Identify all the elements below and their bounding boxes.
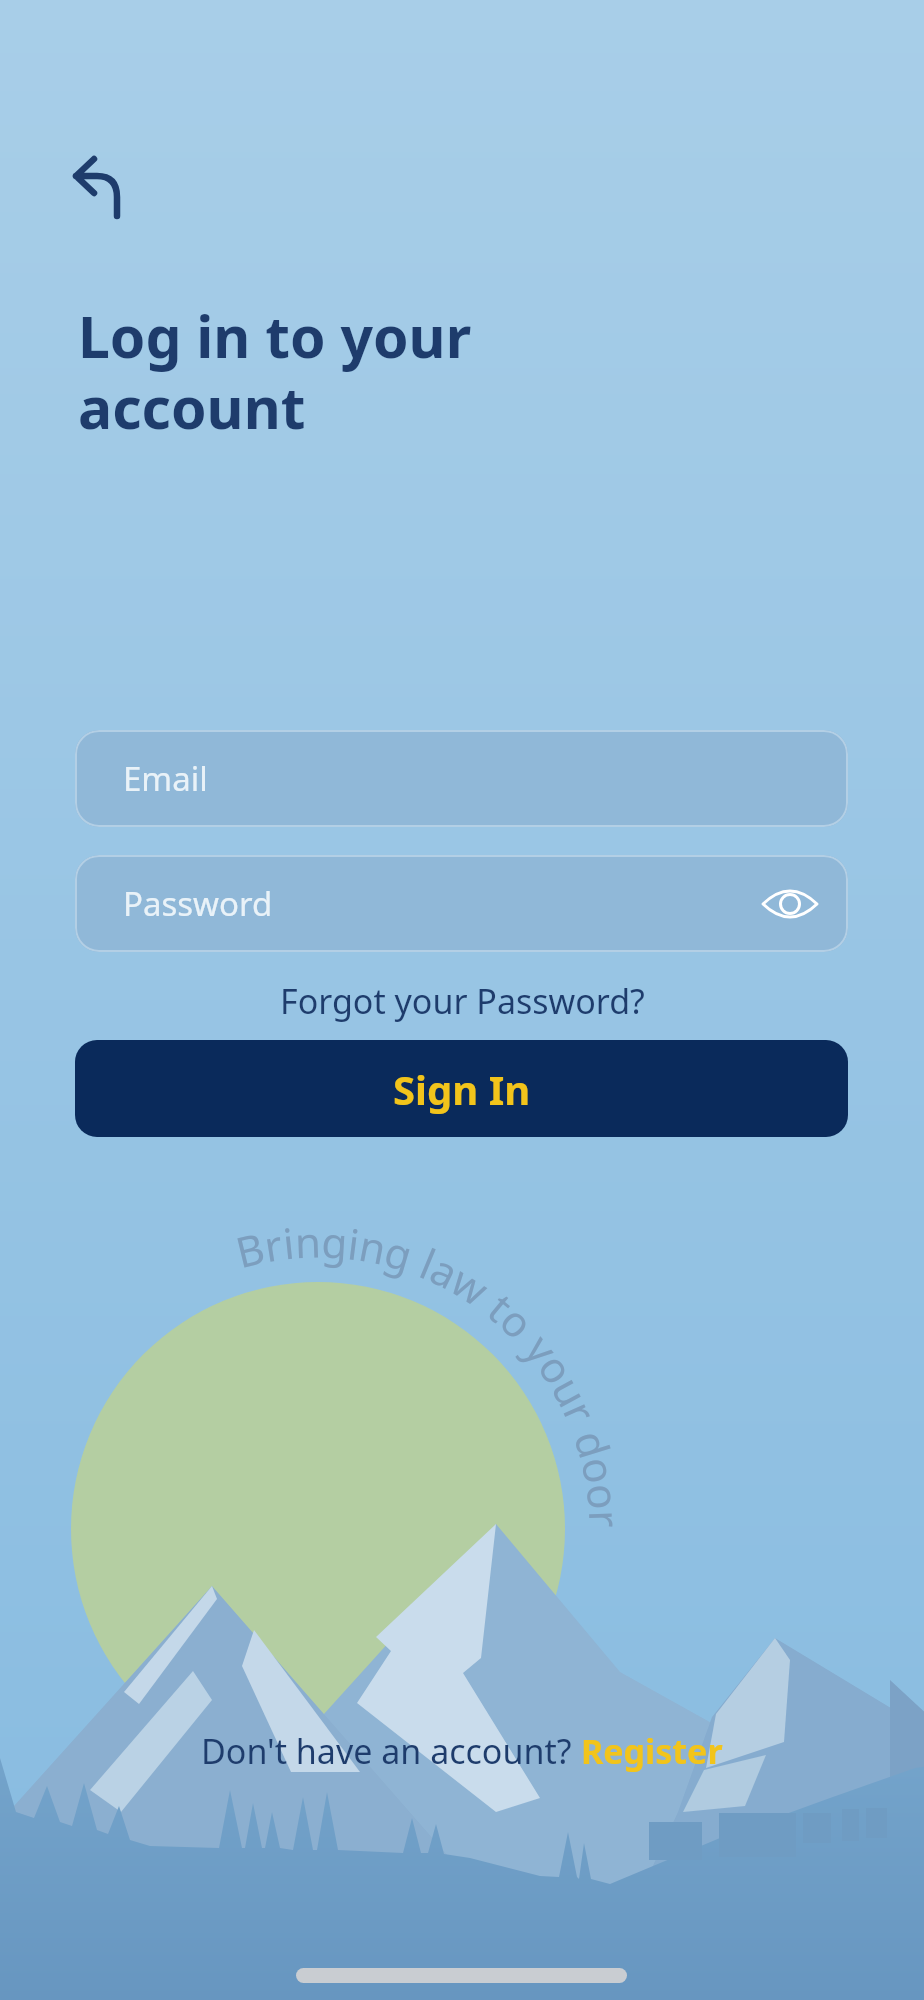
staticText: Sign In <box>393 1062 531 1116</box>
button[interactable]: Sign In <box>75 1040 848 1137</box>
staticText: Password <box>123 881 273 926</box>
staticText: Register <box>581 1728 723 1774</box>
button[interactable]: Register <box>581 1728 723 1774</box>
staticText: Forgot your Password? <box>280 978 645 1024</box>
button[interactable] <box>62 144 128 226</box>
button[interactable] <box>760 879 820 929</box>
button[interactable]: Email <box>75 730 848 827</box>
staticText: Don't have an account? <box>201 1728 581 1774</box>
staticText: Email <box>123 756 208 801</box>
button[interactable]: Forgot your Password? <box>280 978 645 1024</box>
button[interactable]: Password <box>75 855 848 952</box>
staticText: Log in to your account <box>78 297 472 445</box>
